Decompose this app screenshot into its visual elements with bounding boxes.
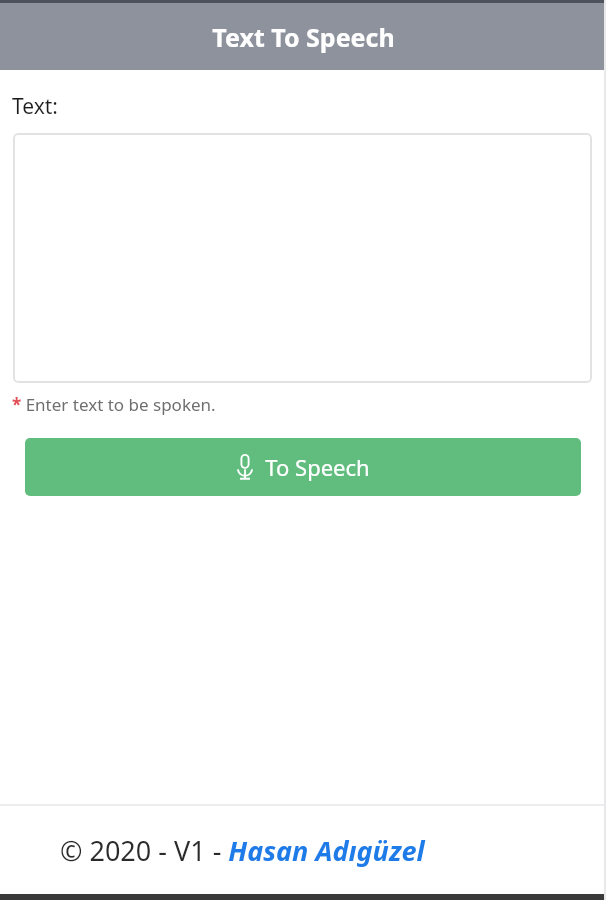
staticText: © 2020 - V1 - Hasan Adıgüzel (60, 832, 425, 869)
staticText: Text To Speech (212, 20, 395, 54)
staticText: * Enter text to be spoken. (12, 393, 216, 416)
other: Microphone (236, 454, 254, 480)
button[interactable]: Microphone (25, 438, 581, 496)
staticText: To Speech (265, 452, 370, 482)
staticText: Text: (12, 92, 58, 121)
button[interactable] (13, 133, 592, 383)
